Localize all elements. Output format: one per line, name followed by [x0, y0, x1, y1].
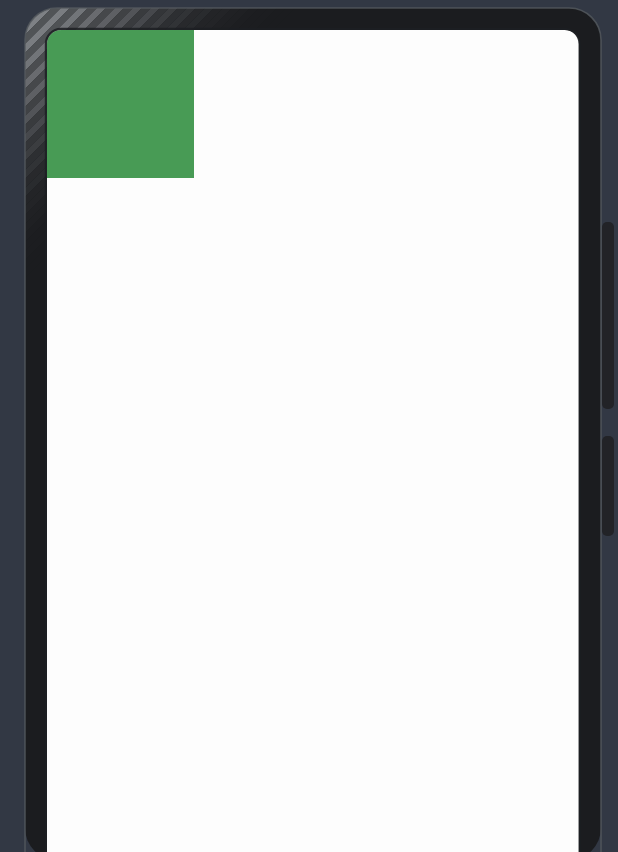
button[interactable]: [47, 30, 194, 178]
